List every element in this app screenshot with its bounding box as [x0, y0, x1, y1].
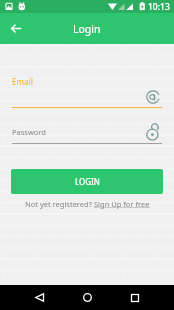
button[interactable]: Back	[24, 285, 54, 310]
button[interactable]: Home	[72, 285, 102, 310]
button[interactable]: LOGIN	[11, 169, 163, 194]
staticText: Email	[12, 76, 33, 87]
staticText: Login	[73, 22, 101, 36]
button[interactable]: Back	[4, 17, 28, 41]
button[interactable]: Sign Up for free	[94, 199, 150, 209]
staticText: Password	[12, 127, 46, 137]
staticText: Not yet registered?	[25, 199, 94, 209]
staticText: 10:13	[148, 1, 170, 13]
button[interactable]: Recents	[120, 285, 150, 310]
staticText: LOGIN	[75, 176, 100, 187]
